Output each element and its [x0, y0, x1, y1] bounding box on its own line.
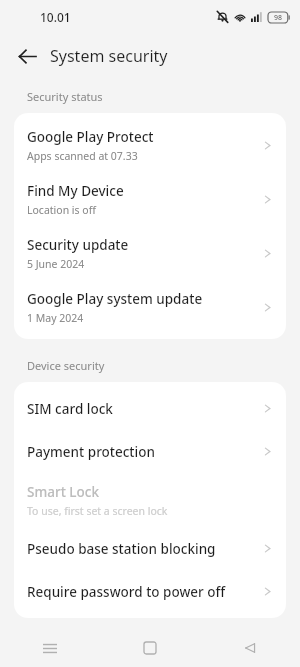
button[interactable]: Security update: [14, 226, 286, 280]
button[interactable]: SIM card lock: [14, 387, 286, 430]
button[interactable]: Pseudo base station blocking: [14, 527, 286, 570]
button[interactable]: Require password to power off: [14, 570, 286, 613]
staticText: To use, first set a screen lock: [27, 504, 168, 518]
staticText: SIM card lock: [27, 400, 113, 418]
button[interactable]: Back: [200, 629, 300, 667]
button[interactable]: Smart Lock: [14, 473, 286, 527]
staticText: Smart Lock: [27, 483, 99, 501]
button[interactable]: Home: [100, 629, 200, 667]
staticText: 1 May 2024: [27, 311, 84, 325]
staticText: Find My Device: [27, 182, 124, 200]
staticText: Security status: [27, 89, 103, 104]
staticText: Device security: [27, 358, 105, 373]
button[interactable]: Recent apps: [0, 629, 100, 667]
staticText: Pseudo base station blocking: [27, 540, 216, 558]
staticText: 5 June 2024: [27, 257, 85, 271]
staticText: Google Play system update: [27, 290, 203, 308]
staticText: Location is off: [27, 203, 96, 217]
button[interactable]: Google Play Protect: [14, 118, 286, 172]
staticText: System security: [50, 45, 168, 67]
staticText: Payment protection: [27, 443, 155, 461]
button[interactable]: Google Play system update: [14, 280, 286, 334]
staticText: Require password to power off: [27, 583, 226, 601]
button[interactable]: Find My Device: [14, 172, 286, 226]
staticText: 98: [274, 13, 283, 23]
staticText: Apps scanned at 07.33: [27, 149, 138, 163]
staticText: Google Play Protect: [27, 128, 154, 146]
staticText: Security update: [27, 236, 129, 254]
button[interactable]: Back: [10, 39, 44, 73]
button[interactable]: Payment protection: [14, 430, 286, 473]
staticText: 10.01: [40, 9, 71, 25]
